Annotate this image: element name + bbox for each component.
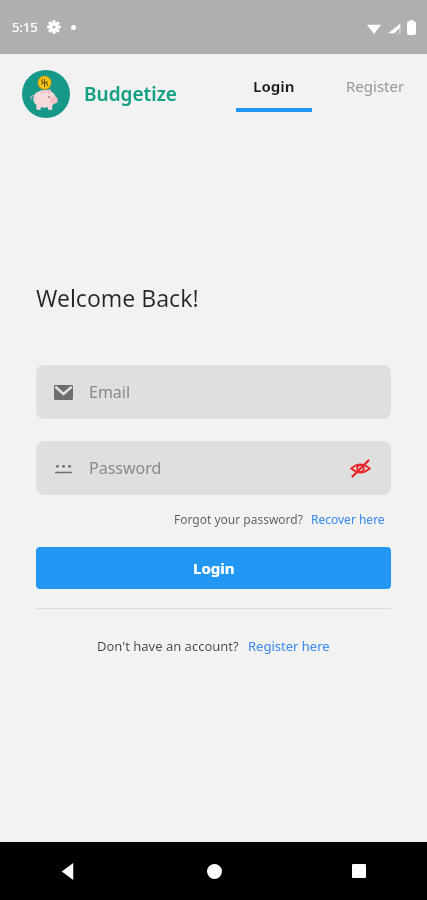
staticText: Don't have an account? <box>97 637 239 655</box>
button[interactable]: Recent apps <box>337 849 381 893</box>
other: Budgetize logo <box>22 70 70 118</box>
button[interactable]: Register here <box>248 635 330 657</box>
staticText: Email <box>89 381 131 403</box>
staticText: Register here <box>248 637 330 655</box>
button[interactable]: Show password <box>347 455 373 481</box>
staticText: Password <box>89 457 162 479</box>
button[interactable]: Register <box>338 68 413 104</box>
button[interactable]: Email <box>36 365 391 419</box>
button[interactable]: Recover here <box>311 509 385 529</box>
staticText: 5:15 <box>12 18 38 36</box>
staticText: Register <box>346 76 405 96</box>
button[interactable]: Login <box>36 547 391 589</box>
staticText: Recover here <box>311 511 385 527</box>
button[interactable]: Home <box>192 849 236 893</box>
staticText: Login <box>253 76 295 96</box>
staticText: Budgetize <box>84 81 177 107</box>
button[interactable]: Login <box>220 68 328 120</box>
button[interactable]: Password <box>36 441 391 495</box>
staticText: Forgot your password? <box>174 511 303 527</box>
staticText: Welcome Back! <box>36 282 199 313</box>
button[interactable]: Back <box>46 849 90 893</box>
staticText: Login <box>193 558 235 578</box>
